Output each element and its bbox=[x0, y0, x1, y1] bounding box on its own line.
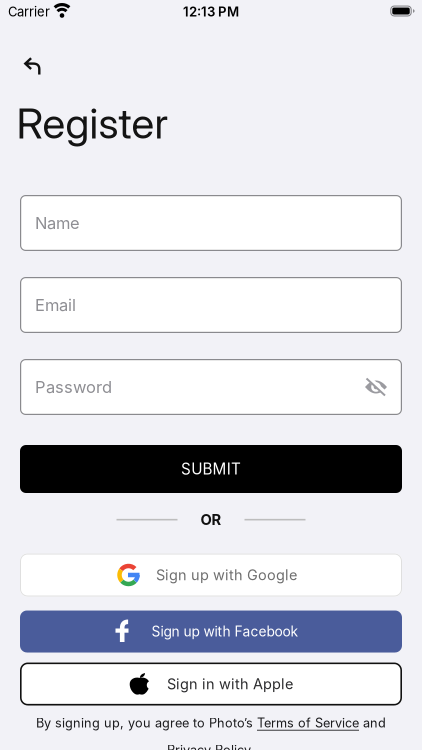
staticText: By signing up, you agree to Photo’s Term… bbox=[36, 715, 386, 730]
staticText: OR bbox=[200, 511, 221, 528]
staticText: Register bbox=[16, 98, 168, 148]
staticText: Password bbox=[35, 377, 112, 397]
button[interactable]: Sign in with Apple bbox=[20, 662, 402, 705]
staticText: Sign in with Apple bbox=[167, 675, 293, 692]
staticText: Carrier bbox=[8, 4, 50, 19]
button[interactable]: Sign up with Google bbox=[20, 553, 402, 596]
button[interactable]: Sign up with Facebook bbox=[20, 610, 402, 652]
staticText: Sign up with Google bbox=[156, 566, 297, 583]
staticText: Sign up with Facebook bbox=[151, 623, 298, 640]
button[interactable]: SUBMIT bbox=[20, 445, 402, 493]
staticText: Privacy Policy. bbox=[167, 742, 255, 750]
staticText: 12:13 PM bbox=[183, 4, 239, 20]
staticText: Name bbox=[35, 213, 80, 233]
staticText: Email bbox=[35, 295, 76, 315]
button[interactable]: Back bbox=[16, 49, 50, 84]
button[interactable]: Show password bbox=[364, 377, 388, 397]
staticText: SUBMIT bbox=[181, 460, 241, 478]
